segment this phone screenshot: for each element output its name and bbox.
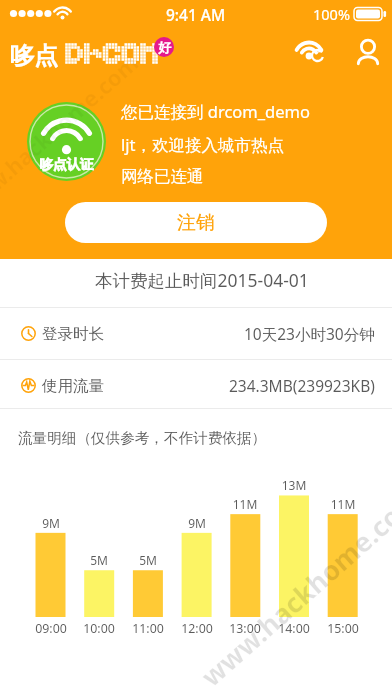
button[interactable]: 注销 [65,202,327,243]
button[interactable]: Account [345,30,391,80]
staticText: 11M [318,496,368,512]
staticText: 100% [313,4,350,24]
staticText: 9M [172,515,222,531]
staticText: 流量明细（仅供参考，不作计费依据） [18,429,267,447]
staticText: 您已连接到 drcom_demo [121,100,310,123]
staticText: 13M [269,477,319,493]
staticText: 10:00 [74,620,124,637]
staticText: 网络已连通 [121,166,204,187]
button[interactable]: 登录时长 [0,308,392,359]
staticText: www.hackhome.com [193,480,392,694]
staticText: 本计费起止时间2015-04-01 [95,268,309,292]
staticText: 哆点认证 [27,156,106,173]
staticText: 登录时长 [42,324,104,344]
staticText: 好 [158,39,171,55]
staticText: 5M [74,552,124,568]
staticText: 13:00 [220,620,270,637]
staticText: 9M [26,515,76,531]
staticText: 9:41 AM [166,4,226,25]
staticText: ljt，欢迎接入城市热点 [121,133,284,156]
button[interactable]: 哆点 [10,28,182,84]
staticText: 11M [220,496,270,512]
staticText: 注销 [177,211,215,235]
staticText: 哆点 [10,41,58,71]
staticText: 234.3MB(239923KB) [229,375,375,396]
button[interactable]: 使用流量 [0,360,392,411]
staticText: 11:00 [123,620,173,637]
staticText: 10天23小时30分钟 [244,323,375,344]
staticText: 5M [123,552,173,568]
staticText: www.hackhome.com [0,47,144,222]
staticText: 12:00 [172,620,222,637]
button[interactable]: Reconnect Wi-Fi [284,30,334,80]
staticText: 09:00 [26,620,76,637]
staticText: 15:00 [318,620,368,637]
staticText: 14:00 [269,620,319,637]
staticText: 使用流量 [42,376,104,396]
